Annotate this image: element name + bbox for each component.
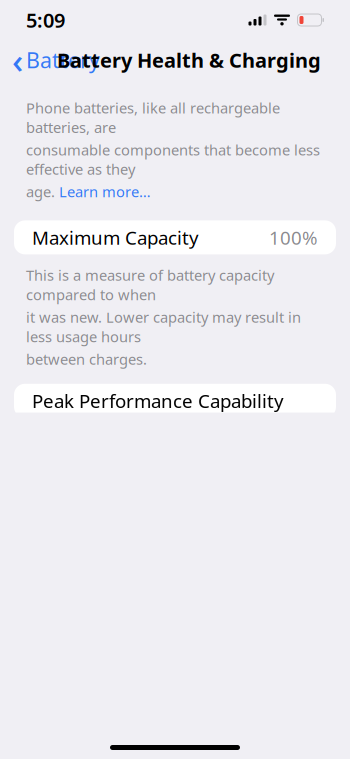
- staticText: 100%: [269, 225, 318, 250]
- button[interactable]: Maximum Capacity: [14, 220, 336, 254]
- staticText: between charges.: [26, 349, 147, 369]
- staticText: Battery: [26, 46, 100, 74]
- staticText: Battery Health & Charging: [57, 47, 321, 73]
- staticText: it was new. Lower capacity may result in…: [26, 307, 301, 346]
- button[interactable]: ‹: [8, 33, 104, 87]
- staticText: Phone batteries, like all rechargeable b…: [26, 98, 280, 137]
- staticText: age.: [26, 182, 59, 201]
- staticText: Maximum Capacity: [32, 225, 199, 250]
- staticText: Learn more…: [59, 182, 151, 201]
- staticText: 5:09: [26, 7, 65, 33]
- staticText: This is a measure of battery capacity co…: [26, 265, 274, 304]
- staticText: ‹: [12, 37, 23, 83]
- button[interactable]: Learn more…: [59, 182, 151, 201]
- button[interactable]: Peak Performance Capability: [14, 384, 336, 418]
- staticText: Peak Performance Capability: [32, 388, 284, 413]
- staticText: consumable components that become less e…: [26, 140, 320, 179]
